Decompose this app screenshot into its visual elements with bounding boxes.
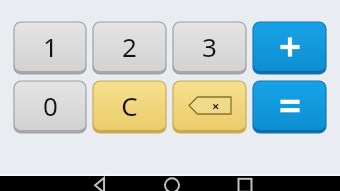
staticText: 2: [122, 29, 137, 64]
button[interactable]: 0: [14, 81, 86, 133]
button[interactable]: 2: [93, 22, 166, 74]
staticText: 3: [202, 29, 217, 64]
staticText: ×: [212, 97, 220, 115]
staticText: 0: [43, 88, 58, 123]
staticText: 1: [43, 29, 58, 64]
button[interactable]: 3: [173, 22, 246, 74]
button[interactable]: Plus: [253, 22, 326, 74]
button[interactable]: Backspace: [173, 81, 246, 133]
button[interactable]: Equals: [253, 81, 326, 133]
staticText: C: [121, 88, 138, 123]
button[interactable]: Clear: [93, 81, 166, 133]
button[interactable]: 1: [14, 22, 86, 74]
